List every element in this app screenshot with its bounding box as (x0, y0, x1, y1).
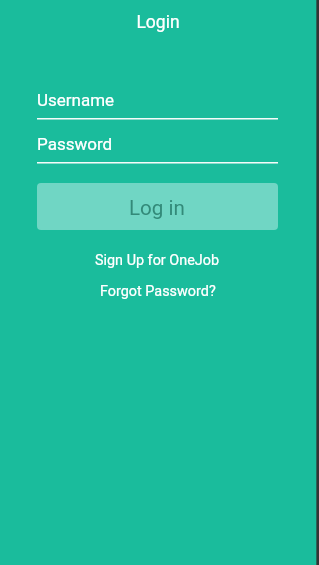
button[interactable]: Sign Up for OneJob (93, 252, 221, 269)
staticText: Log in (129, 196, 185, 220)
button[interactable]: Forgot Password? (98, 283, 218, 300)
button[interactable]: Password (37, 134, 278, 164)
staticText: Login (136, 12, 180, 33)
staticText: Password (37, 134, 113, 154)
staticText: Username (37, 90, 115, 110)
button[interactable]: Log in (37, 183, 278, 230)
button[interactable]: Username (37, 90, 278, 120)
